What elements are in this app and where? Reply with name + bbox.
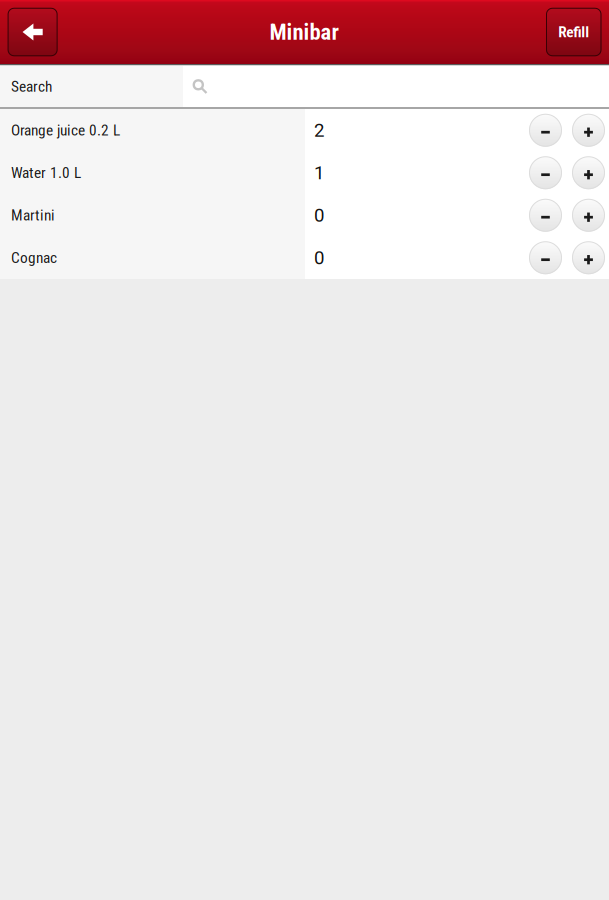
staticText: Orange juice 0.2 L: [11, 121, 120, 139]
button[interactable]: Increase Cognac: [572, 241, 605, 274]
button[interactable]: Increase Orange juice 0.2 L: [572, 114, 605, 147]
staticText: Water 1.0 L: [11, 164, 81, 182]
button[interactable]: Increase Martini: [572, 199, 605, 232]
staticText: Search: [11, 77, 52, 95]
staticText: Refill: [558, 23, 589, 41]
staticText: Minibar: [269, 19, 339, 45]
staticText: 1: [314, 162, 324, 184]
button[interactable]: Decrease Cognac: [529, 241, 562, 274]
button[interactable]: Decrease Orange juice 0.2 L: [529, 114, 562, 147]
staticText: 2: [314, 119, 324, 141]
staticText: 0: [314, 204, 324, 226]
staticText: Martini: [11, 206, 55, 224]
button[interactable]: Increase Water 1.0 L: [572, 156, 605, 189]
staticText: 0: [314, 247, 324, 269]
button[interactable]: Refill: [546, 8, 601, 56]
button[interactable]: Decrease Martini: [529, 199, 562, 232]
button[interactable]: Back: [8, 8, 58, 56]
button[interactable]: Decrease Water 1.0 L: [529, 156, 562, 189]
staticText: Cognac: [11, 249, 57, 267]
